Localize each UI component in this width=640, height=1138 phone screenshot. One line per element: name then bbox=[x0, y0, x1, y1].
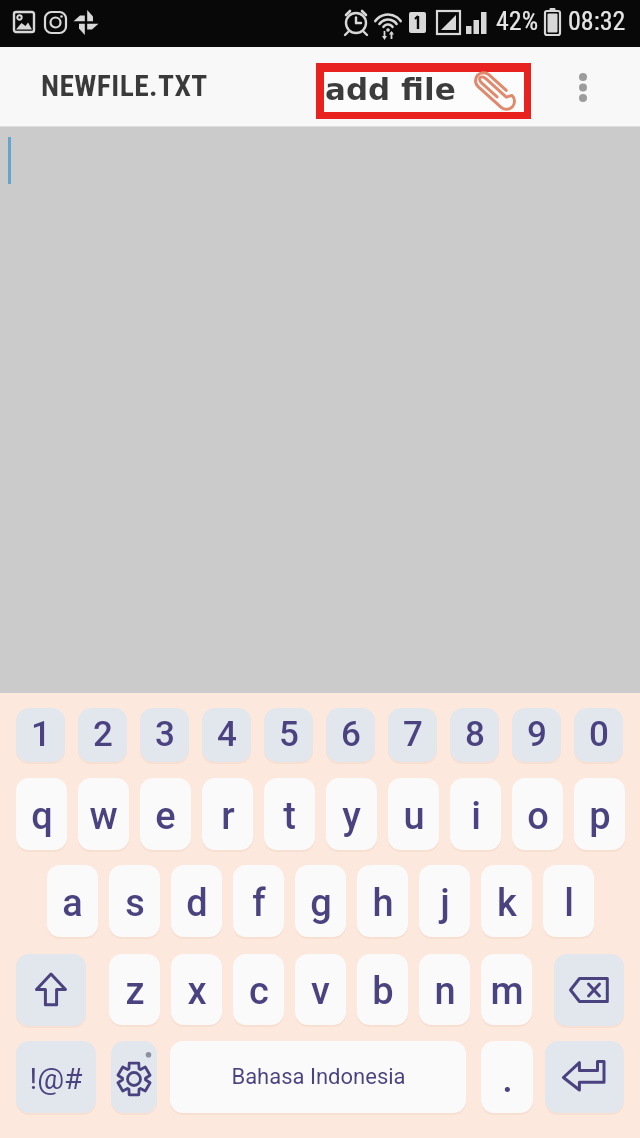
staticText: h bbox=[372, 881, 394, 926]
staticText: 9 bbox=[527, 714, 547, 755]
button[interactable]: Settings bbox=[111, 1041, 157, 1113]
staticText: 8 bbox=[465, 714, 485, 755]
staticText: z bbox=[125, 969, 145, 1014]
staticText: 6 bbox=[341, 714, 361, 755]
button[interactable]: u bbox=[388, 778, 439, 850]
staticText: p bbox=[589, 794, 611, 839]
staticText: b bbox=[372, 969, 394, 1014]
button[interactable]: !@# bbox=[16, 1041, 96, 1113]
staticText: c bbox=[249, 969, 269, 1014]
staticText: 42% bbox=[496, 6, 539, 36]
staticText: x bbox=[187, 969, 207, 1014]
button[interactable]: t bbox=[264, 778, 315, 850]
staticText: r bbox=[221, 794, 235, 839]
button[interactable]: 4 bbox=[202, 708, 251, 762]
button[interactable]: e bbox=[140, 778, 191, 850]
staticText: 08:32 bbox=[568, 6, 626, 36]
button[interactable]: a bbox=[47, 865, 98, 937]
staticText: k bbox=[497, 881, 517, 926]
staticText: !@# bbox=[29, 1061, 83, 1096]
button[interactable]: Backspace bbox=[554, 954, 624, 1026]
button[interactable]: 2 bbox=[78, 708, 127, 762]
button[interactable]: z bbox=[109, 954, 160, 1025]
button[interactable]: f bbox=[233, 865, 284, 937]
staticText: 1 bbox=[31, 714, 51, 755]
staticText: l bbox=[564, 881, 574, 926]
button[interactable]: i bbox=[450, 778, 501, 850]
button[interactable]: add file bbox=[324, 72, 524, 112]
staticText: m bbox=[490, 969, 524, 1014]
button[interactable]: r bbox=[202, 778, 253, 850]
staticText: NEWFILE.TXT bbox=[41, 69, 208, 104]
button[interactable]: w bbox=[78, 778, 129, 850]
button[interactable]: 7 bbox=[388, 708, 437, 762]
staticText: g bbox=[310, 881, 332, 926]
button[interactable]: c bbox=[233, 954, 284, 1025]
staticText: a bbox=[62, 881, 83, 926]
staticText: w bbox=[89, 794, 118, 839]
button[interactable]: v bbox=[295, 954, 346, 1025]
staticText: y bbox=[342, 794, 361, 839]
staticText: Bahasa Indonesia bbox=[231, 1064, 406, 1090]
button[interactable]: x bbox=[171, 954, 222, 1025]
staticText: 5 bbox=[279, 714, 299, 755]
button[interactable]: o bbox=[512, 778, 563, 850]
staticText: t bbox=[283, 794, 296, 839]
staticText: v bbox=[311, 969, 330, 1014]
staticText: 0 bbox=[589, 714, 609, 755]
staticText: o bbox=[527, 794, 549, 839]
staticText: 7 bbox=[403, 714, 423, 755]
staticText: e bbox=[155, 794, 176, 839]
button[interactable]: g bbox=[295, 865, 346, 937]
button[interactable]: 3 bbox=[140, 708, 189, 762]
button[interactable]: 0 bbox=[574, 708, 623, 762]
staticText: 3 bbox=[155, 714, 175, 755]
staticText: u bbox=[403, 794, 425, 839]
button[interactable]: 9 bbox=[512, 708, 561, 762]
staticText: n bbox=[434, 969, 456, 1014]
button[interactable]: 6 bbox=[326, 708, 375, 762]
button[interactable]: Bahasa Indonesia bbox=[170, 1041, 466, 1113]
button[interactable]: j bbox=[419, 865, 470, 937]
button[interactable]: m bbox=[481, 954, 532, 1025]
staticText: j bbox=[440, 881, 450, 926]
button[interactable]: b bbox=[357, 954, 408, 1025]
staticText: s bbox=[125, 881, 145, 926]
button[interactable]: 8 bbox=[450, 708, 499, 762]
button[interactable]: h bbox=[357, 865, 408, 937]
button[interactable]: Enter bbox=[545, 1041, 624, 1113]
button[interactable]: 5 bbox=[264, 708, 313, 762]
staticText: q bbox=[31, 794, 53, 839]
staticText: f bbox=[252, 881, 266, 926]
staticText: i bbox=[471, 794, 481, 839]
button[interactable]: 1 bbox=[16, 708, 65, 762]
staticText: 4 bbox=[217, 714, 237, 755]
button[interactable]: k bbox=[481, 865, 532, 937]
button[interactable]: Shift bbox=[16, 954, 86, 1026]
staticText: d bbox=[186, 881, 208, 926]
button[interactable]: n bbox=[419, 954, 470, 1025]
button[interactable]: p bbox=[574, 778, 625, 850]
button[interactable]: d bbox=[171, 865, 222, 937]
staticText: . bbox=[502, 1057, 513, 1102]
button[interactable]: More options bbox=[562, 66, 604, 108]
staticText: add file bbox=[325, 71, 456, 107]
button[interactable]: q bbox=[16, 778, 67, 850]
button[interactable]: l bbox=[543, 865, 594, 937]
button[interactable]: y bbox=[326, 778, 377, 850]
button[interactable]: . bbox=[481, 1041, 533, 1113]
staticText: 2 bbox=[93, 714, 113, 755]
button[interactable]: s bbox=[109, 865, 160, 937]
